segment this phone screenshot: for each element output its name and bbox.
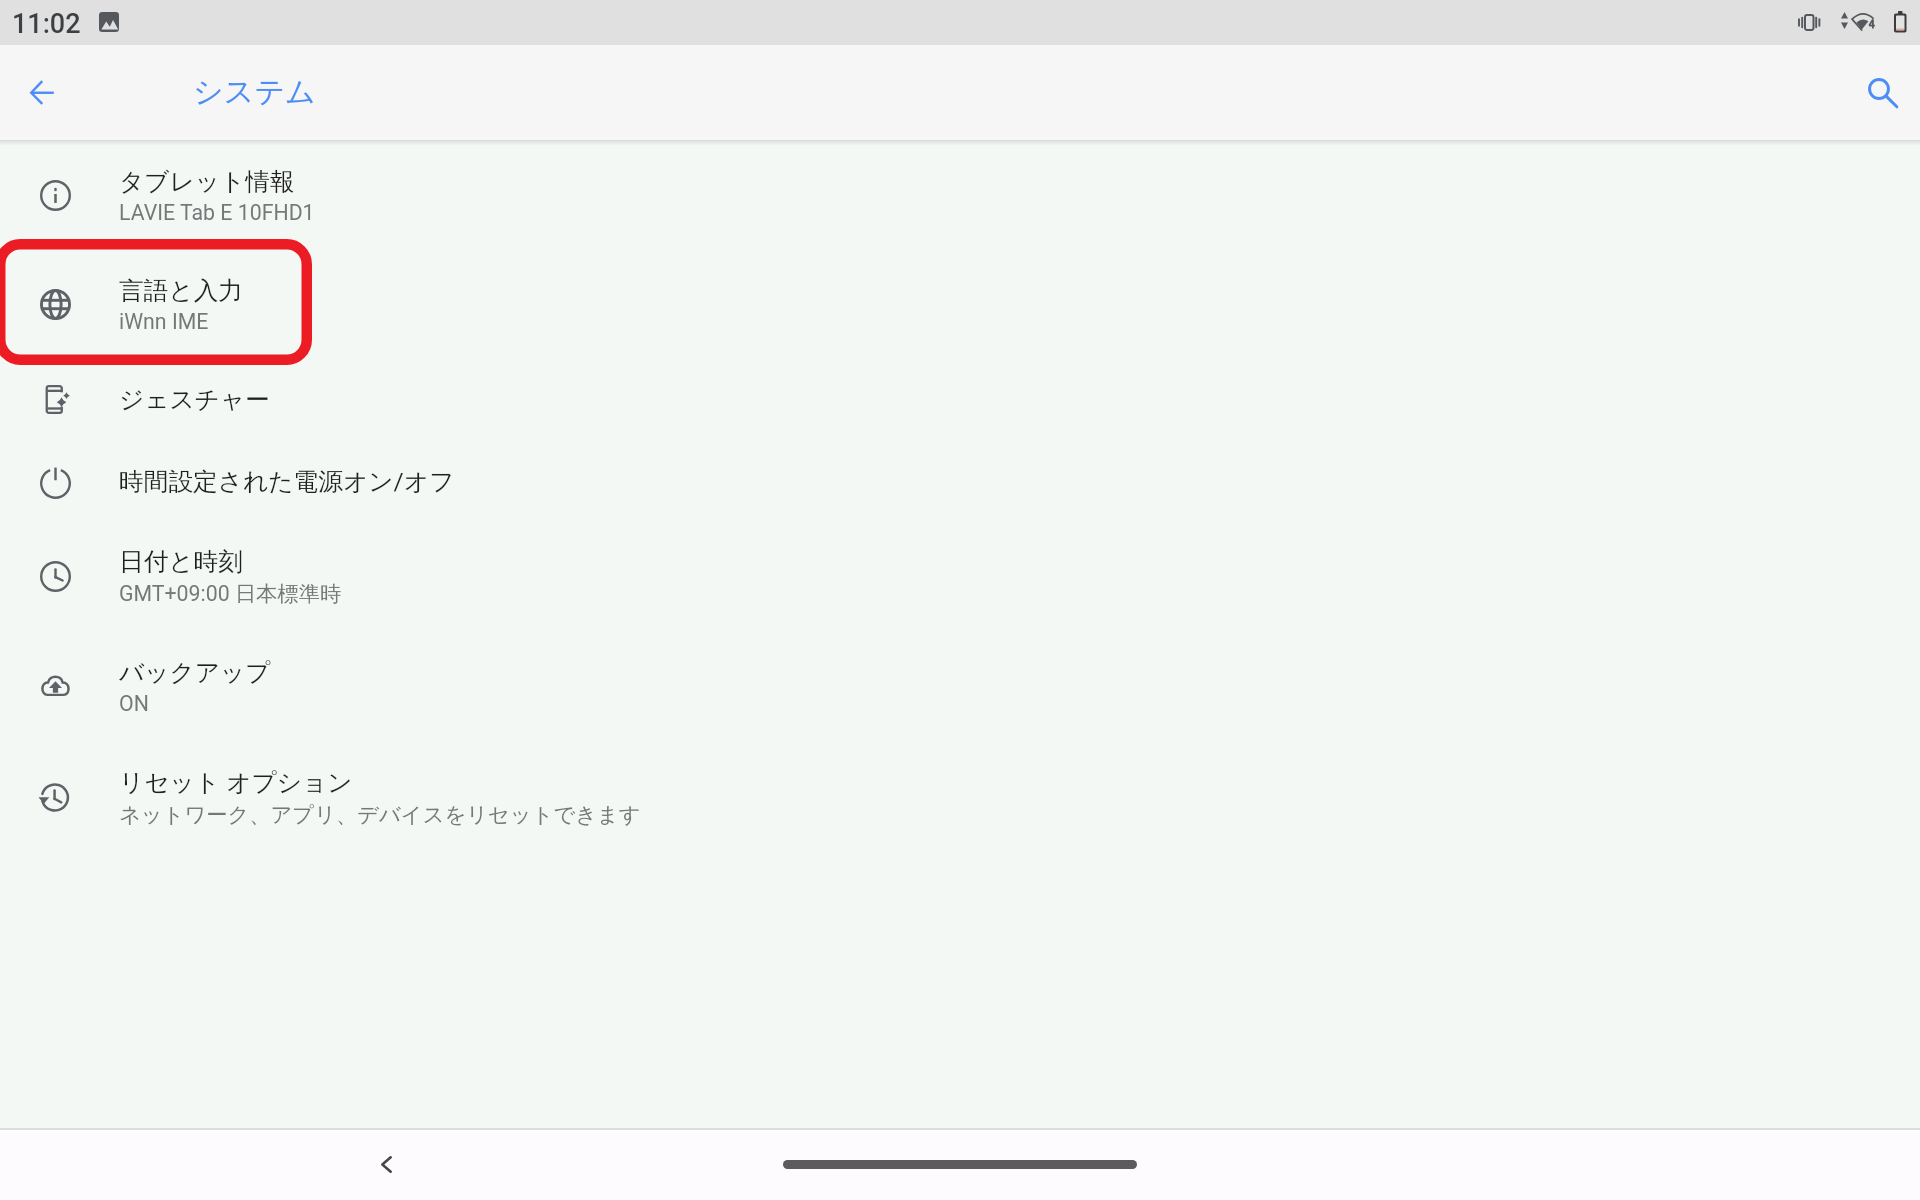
button[interactable]: Search bbox=[1853, 63, 1913, 123]
staticText: リセット オプション bbox=[119, 767, 353, 798]
staticText: タブレット情報 bbox=[119, 166, 295, 197]
button[interactable]: 言語と入力 bbox=[0, 250, 1920, 358]
staticText: ネットワーク、アプリ、デバイスをリセットできます bbox=[119, 801, 641, 828]
staticText: 日付と時刻 bbox=[119, 546, 244, 577]
button[interactable]: タブレット情報 bbox=[0, 141, 1920, 249]
button[interactable]: リセット オプション bbox=[0, 743, 1920, 851]
button[interactable]: Back bbox=[12, 62, 72, 122]
staticText: LAVIE Tab E 10FHD1 bbox=[119, 200, 315, 225]
button[interactable]: 時間設定された電源オン/オフ bbox=[0, 440, 1920, 522]
staticText: iWnn IME bbox=[119, 309, 209, 334]
button[interactable]: Back bbox=[355, 1133, 417, 1195]
staticText: 時間設定された電源オン/オフ bbox=[119, 466, 455, 497]
staticText: 11:02 bbox=[12, 8, 81, 40]
button[interactable]: 日付と時刻 bbox=[0, 522, 1920, 630]
button[interactable]: Home bbox=[783, 1160, 1137, 1169]
staticText: システム bbox=[193, 73, 316, 111]
staticText: GMT+09:00 日本標準時 bbox=[119, 580, 342, 607]
staticText: ジェスチャー bbox=[119, 384, 271, 415]
button[interactable]: ジェスチャー bbox=[0, 358, 1920, 440]
staticText: 言語と入力 bbox=[119, 275, 244, 306]
staticText: バックアップ bbox=[119, 657, 271, 688]
button[interactable]: バックアップ bbox=[0, 632, 1920, 740]
staticText: ON bbox=[119, 691, 149, 716]
